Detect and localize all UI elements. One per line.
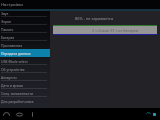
staticText: USB Mode select <box>1 59 28 64</box>
staticText: Об устройстве <box>1 67 25 72</box>
staticText: Батарея <box>1 35 15 40</box>
staticText: Дата и время <box>1 83 24 88</box>
staticText: Передача данных <box>1 51 31 56</box>
button[interactable]: Экран <box>0 17 50 25</box>
button[interactable]: Home <box>14 109 25 120</box>
button[interactable]: Звук <box>0 9 50 17</box>
staticText: Настройки <box>1 2 23 8</box>
button[interactable]: Recents <box>27 109 38 120</box>
staticText: Для разработчиков <box>1 99 34 104</box>
button[interactable]: Батарея <box>0 33 50 41</box>
staticText: 2 ч 4 мин 37 с от батареи <box>92 28 139 33</box>
button[interactable]: Аккаунты <box>0 73 50 81</box>
button[interactable]: Для разработчиков <box>0 97 50 105</box>
button[interactable]: Приложения <box>0 41 50 49</box>
staticText: Приложения <box>1 43 23 48</box>
other: Battery <box>152 112 157 117</box>
button[interactable]: Спец. возможности <box>0 89 50 97</box>
button[interactable]: Дата и время <box>0 81 50 89</box>
button[interactable]: 2 ч 4 мин 37 с от батареи <box>53 26 157 34</box>
staticText: Память <box>1 27 14 32</box>
button[interactable]: Back <box>1 109 12 120</box>
button[interactable]: Память <box>0 25 50 33</box>
staticText: Экран <box>1 19 12 24</box>
staticText: Спец. возможности <box>1 91 34 96</box>
staticText: Звук <box>1 11 9 16</box>
other: Wifi <box>146 112 151 117</box>
button[interactable]: USB Mode select <box>0 57 50 65</box>
staticText: Аккаунты <box>1 75 17 80</box>
staticText: 86% - не заряжается <box>75 16 114 21</box>
button[interactable]: Передача данных <box>0 49 50 57</box>
button[interactable]: Об устройстве <box>0 65 50 73</box>
